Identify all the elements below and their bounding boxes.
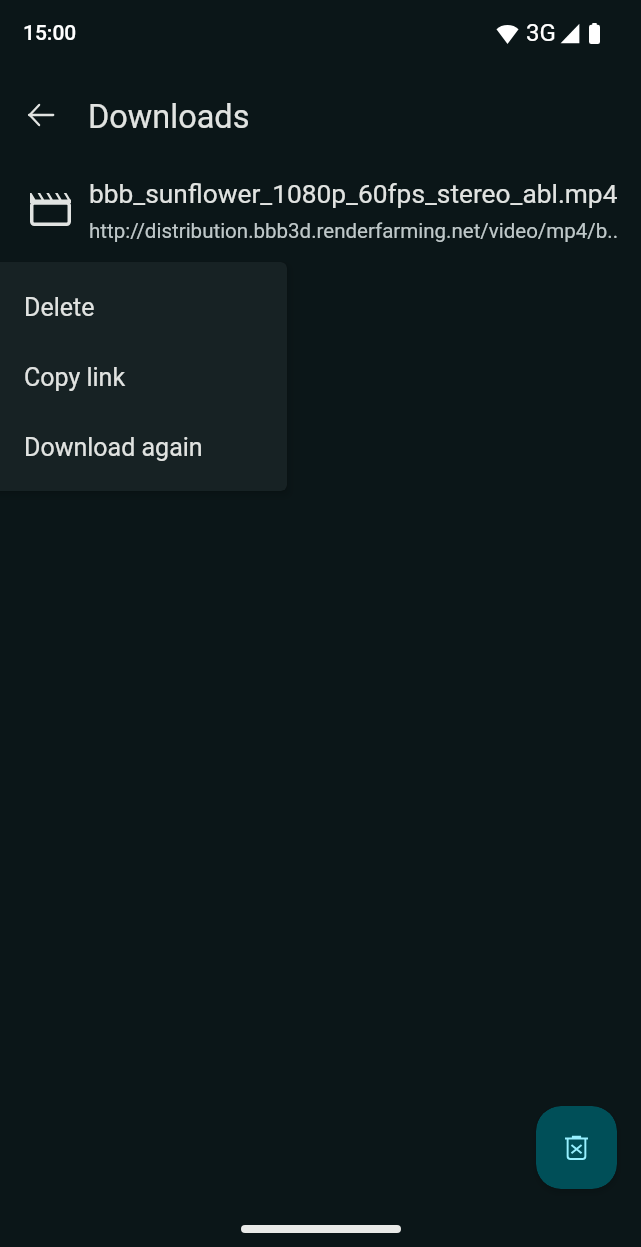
button[interactable]: bbb_sunflower_1080p_60fps_stereo_abl.mp4 (0, 164, 641, 258)
staticText: bbb_sunflower_1080p_60fps_stereo_abl.mp4 (89, 179, 618, 210)
button[interactable]: Download again (0, 412, 287, 482)
staticText: 3G (526, 19, 556, 47)
staticText: http://distribution.bbb3d.renderfarming.… (89, 219, 619, 243)
staticText: 15:00 (23, 21, 77, 46)
button[interactable]: Back (11, 85, 71, 145)
staticText: Download again (24, 433, 203, 462)
button[interactable]: Delete all downloads (536, 1106, 617, 1189)
staticText: Copy link (24, 363, 126, 392)
button[interactable]: Delete (0, 272, 287, 342)
staticText: Downloads (88, 98, 250, 136)
staticText: Delete (24, 293, 95, 322)
button[interactable]: Copy link (0, 342, 287, 412)
